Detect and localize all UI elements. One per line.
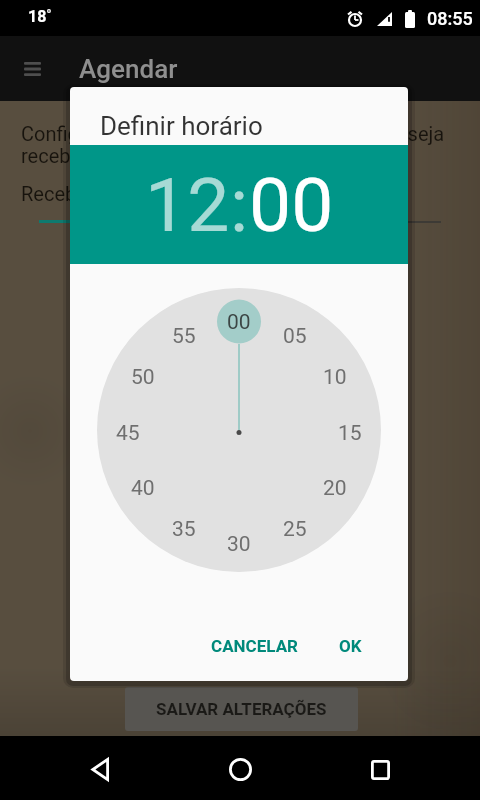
button[interactable]: 00 — [217, 300, 261, 344]
button[interactable] — [8, 45, 56, 93]
staticText: Config — [21, 122, 79, 145]
staticText: 08:55 — [427, 8, 473, 29]
button[interactable]: CANCELAR — [199, 626, 310, 666]
staticText: 20 — [323, 476, 347, 501]
staticText: Recebe — [21, 182, 87, 205]
staticText: 10 — [323, 365, 347, 390]
button[interactable]: 25 — [273, 507, 317, 551]
staticText: Agendar — [79, 54, 178, 84]
staticText: 30 — [227, 532, 251, 557]
staticText: 15 — [338, 421, 362, 446]
button[interactable]: 15 — [328, 411, 372, 455]
staticText: 05 — [283, 324, 307, 349]
staticText: CANCELAR — [211, 636, 298, 656]
button[interactable]: 55 — [162, 314, 206, 358]
button[interactable]: 00 — [249, 161, 334, 249]
button[interactable]: 12 — [145, 161, 230, 249]
button[interactable] — [180, 736, 300, 800]
button[interactable]: 45 — [106, 411, 150, 455]
staticText: OK — [339, 636, 362, 656]
staticText: eseja — [397, 122, 445, 145]
staticText: Definir horário — [100, 111, 263, 141]
button[interactable] — [40, 736, 160, 800]
button[interactable]: 20 — [313, 466, 357, 510]
button[interactable]: 30 — [217, 522, 261, 566]
button[interactable] — [320, 736, 440, 800]
staticText: 45 — [116, 421, 140, 446]
button[interactable]: 10 — [313, 355, 357, 399]
staticText: SALVAR ALTERAÇÕES — [156, 699, 327, 719]
staticText: 35 — [172, 517, 196, 542]
staticText: 00 — [227, 310, 251, 335]
staticText: 25 — [283, 517, 307, 542]
staticText: recebe — [21, 144, 82, 167]
button[interactable]: 40 — [121, 466, 165, 510]
button[interactable]: SALVAR ALTERAÇÕES — [125, 687, 358, 731]
staticText: 18˚ — [28, 7, 52, 26]
button[interactable]: OK — [327, 626, 374, 666]
staticText: 50 — [131, 365, 155, 390]
staticText: : — [230, 161, 249, 249]
button[interactable]: 35 — [162, 507, 206, 551]
staticText: 55 — [172, 324, 196, 349]
button[interactable]: 05 — [273, 314, 317, 358]
button[interactable]: 50 — [121, 355, 165, 399]
staticText: 40 — [131, 476, 155, 501]
